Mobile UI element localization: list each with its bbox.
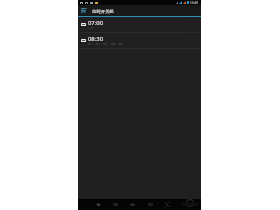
other: App icon (81, 8, 87, 14)
button[interactable]: Recent apps (147, 201, 154, 208)
staticText: 定时开关机 (92, 9, 114, 15)
staticText: 一次 (88, 27, 93, 30)
button[interactable]: Back (95, 201, 102, 208)
button[interactable]: Enable alarm (190, 39, 194, 43)
staticText: 08:30 (88, 35, 104, 43)
button[interactable]: Home (129, 201, 136, 208)
staticText: 周一、周二、周三、周四、周五 (88, 43, 123, 46)
button[interactable]: Menu (112, 201, 119, 208)
button[interactable]: 07:00 (78, 17, 201, 32)
button[interactable]: 08:30 (78, 33, 201, 48)
staticText: 07:00 (88, 19, 104, 27)
button[interactable]: App icon (78, 5, 201, 16)
button[interactable]: Enable alarm (190, 23, 194, 27)
staticText: 14:40 (190, 1, 199, 5)
button[interactable]: Screenshot (164, 201, 171, 208)
